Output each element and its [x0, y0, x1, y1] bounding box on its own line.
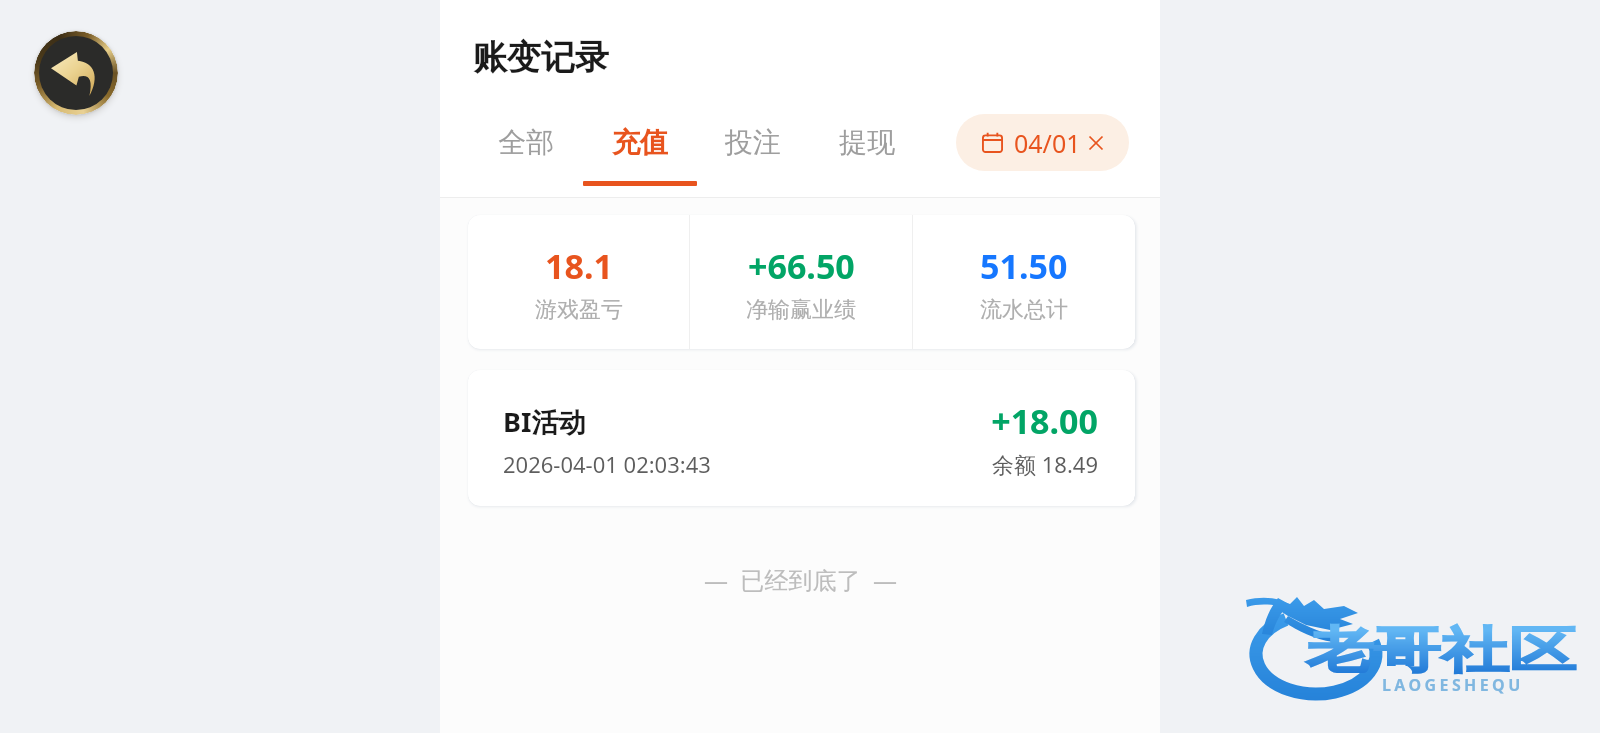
staticText: 投注	[725, 125, 781, 160]
button[interactable]: 51.50	[913, 215, 1135, 349]
button[interactable]: 提现	[810, 118, 924, 190]
staticText: 净输赢业绩	[746, 296, 856, 324]
staticText: 充值	[612, 125, 668, 160]
staticText: 账变记录	[473, 36, 609, 79]
staticText: 流水总计	[980, 296, 1068, 324]
staticText: +18.00	[798, 398, 1098, 444]
staticText: 游戏盈亏	[535, 296, 623, 324]
button[interactable]: Back	[34, 31, 118, 115]
staticText: LAOGESHEQU	[1382, 674, 1524, 696]
staticText: BI活动	[503, 403, 586, 440]
staticText: 51.50	[980, 243, 1068, 289]
staticText: 04/01	[1014, 126, 1081, 160]
staticText: 提现	[839, 125, 895, 160]
staticText: 余额 18.49	[798, 449, 1098, 479]
button[interactable]: 充值	[583, 118, 697, 190]
staticText: — 已经到底了 —	[704, 563, 897, 596]
staticText: 18.1	[545, 243, 613, 289]
button[interactable]: 投注	[696, 118, 810, 190]
button[interactable]: 全部	[469, 118, 583, 190]
staticText: 全部	[498, 125, 554, 160]
staticText: 老哥社区	[1306, 620, 1576, 682]
button[interactable]: 18.1	[468, 215, 689, 349]
button[interactable]: 04/01	[956, 114, 1129, 171]
staticText: +66.50	[748, 243, 855, 289]
staticText: 2026-04-01 02:03:43	[503, 449, 711, 479]
button[interactable]: +66.50	[690, 215, 912, 349]
button[interactable]: BI活动	[468, 370, 1135, 506]
